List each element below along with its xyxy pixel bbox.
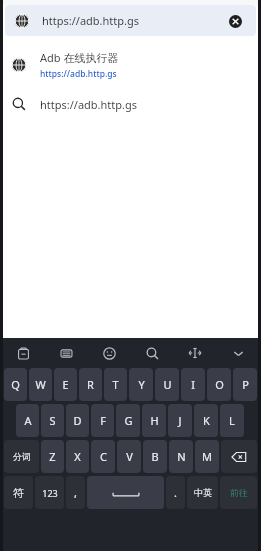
button[interactable]: B: [143, 440, 167, 473]
staticText: C: [100, 449, 107, 464]
staticText: N: [177, 449, 186, 464]
staticText: T: [112, 377, 119, 392]
button[interactable]: W: [29, 368, 52, 401]
staticText: B: [151, 449, 159, 464]
staticText: https://adb.http.gs: [40, 97, 138, 112]
button[interactable]: T: [104, 368, 127, 401]
button[interactable]: G: [116, 404, 140, 437]
button[interactable]: L: [220, 404, 244, 437]
button[interactable]: https://adb.http.gs: [0, 86, 261, 122]
staticText: I: [191, 377, 195, 392]
staticText: J: [178, 413, 182, 428]
button[interactable]: Space: [87, 476, 164, 509]
button[interactable]: F: [91, 404, 114, 437]
button[interactable]: .: [166, 476, 185, 509]
staticText: Adb 在线执行器: [40, 50, 119, 65]
button[interactable]: R: [79, 368, 102, 401]
staticText: L: [229, 413, 235, 428]
button[interactable]: Hide keyboard: [227, 342, 249, 364]
button[interactable]: V: [117, 440, 141, 473]
staticText: W: [35, 377, 46, 392]
button[interactable]: X: [66, 440, 89, 473]
staticText: 123: [42, 487, 58, 499]
button[interactable]: O: [207, 368, 231, 401]
staticText: D: [73, 413, 82, 428]
button[interactable]: https://adb.http.gs: [5, 5, 256, 36]
button[interactable]: ,: [66, 476, 85, 509]
button[interactable]: Emoji: [98, 342, 120, 364]
staticText: F: [100, 413, 106, 428]
button[interactable]: M: [195, 440, 219, 473]
staticText: K: [203, 413, 210, 428]
button[interactable]: Search: [141, 342, 163, 364]
staticText: 前往: [230, 487, 248, 498]
button[interactable]: Clear text: [224, 10, 246, 32]
staticText: .: [174, 485, 177, 500]
staticText: Z: [49, 449, 56, 464]
staticText: V: [126, 449, 133, 464]
staticText: X: [74, 449, 81, 464]
staticText: https://adb.http.gs: [42, 13, 140, 28]
button[interactable]: Y: [129, 368, 153, 401]
staticText: M: [202, 449, 212, 464]
button[interactable]: S: [41, 404, 64, 437]
button[interactable]: 分词: [4, 440, 39, 473]
button[interactable]: P: [233, 368, 257, 401]
staticText: 中英: [194, 487, 212, 498]
button[interactable]: A: [16, 404, 39, 437]
button[interactable]: D: [66, 404, 89, 437]
button[interactable]: C: [91, 440, 115, 473]
staticText: E: [62, 377, 69, 392]
button[interactable]: Backspace: [221, 440, 257, 473]
button[interactable]: N: [169, 440, 193, 473]
button[interactable]: I: [181, 368, 205, 401]
button[interactable]: 123: [35, 476, 64, 509]
button[interactable]: U: [155, 368, 179, 401]
staticText: H: [150, 413, 159, 428]
button[interactable]: Cursor move: [184, 342, 206, 364]
staticText: 符: [13, 486, 24, 500]
button[interactable]: 中英: [187, 476, 218, 509]
button[interactable]: J: [168, 404, 192, 437]
button[interactable]: E: [54, 368, 77, 401]
staticText: R: [87, 377, 94, 392]
button[interactable]: H: [142, 404, 166, 437]
button[interactable]: Clipboard: [12, 342, 34, 364]
staticText: U: [163, 377, 172, 392]
staticText: A: [24, 413, 32, 428]
button[interactable]: Z: [41, 440, 64, 473]
staticText: https://adb.http.gs: [40, 68, 117, 80]
button[interactable]: Q: [4, 368, 27, 401]
staticText: Q: [11, 377, 20, 392]
staticText: Y: [138, 377, 145, 392]
staticText: P: [242, 377, 249, 392]
button[interactable]: 符: [4, 476, 33, 509]
button[interactable]: Adb 在线执行器: [0, 44, 261, 86]
button[interactable]: Keyboard layout: [55, 342, 77, 364]
staticText: ,: [74, 485, 77, 500]
button[interactable]: K: [194, 404, 218, 437]
staticText: G: [124, 413, 133, 428]
staticText: S: [49, 413, 56, 428]
staticText: O: [215, 377, 224, 392]
staticText: 分词: [13, 451, 31, 462]
button[interactable]: 前往: [220, 476, 257, 509]
